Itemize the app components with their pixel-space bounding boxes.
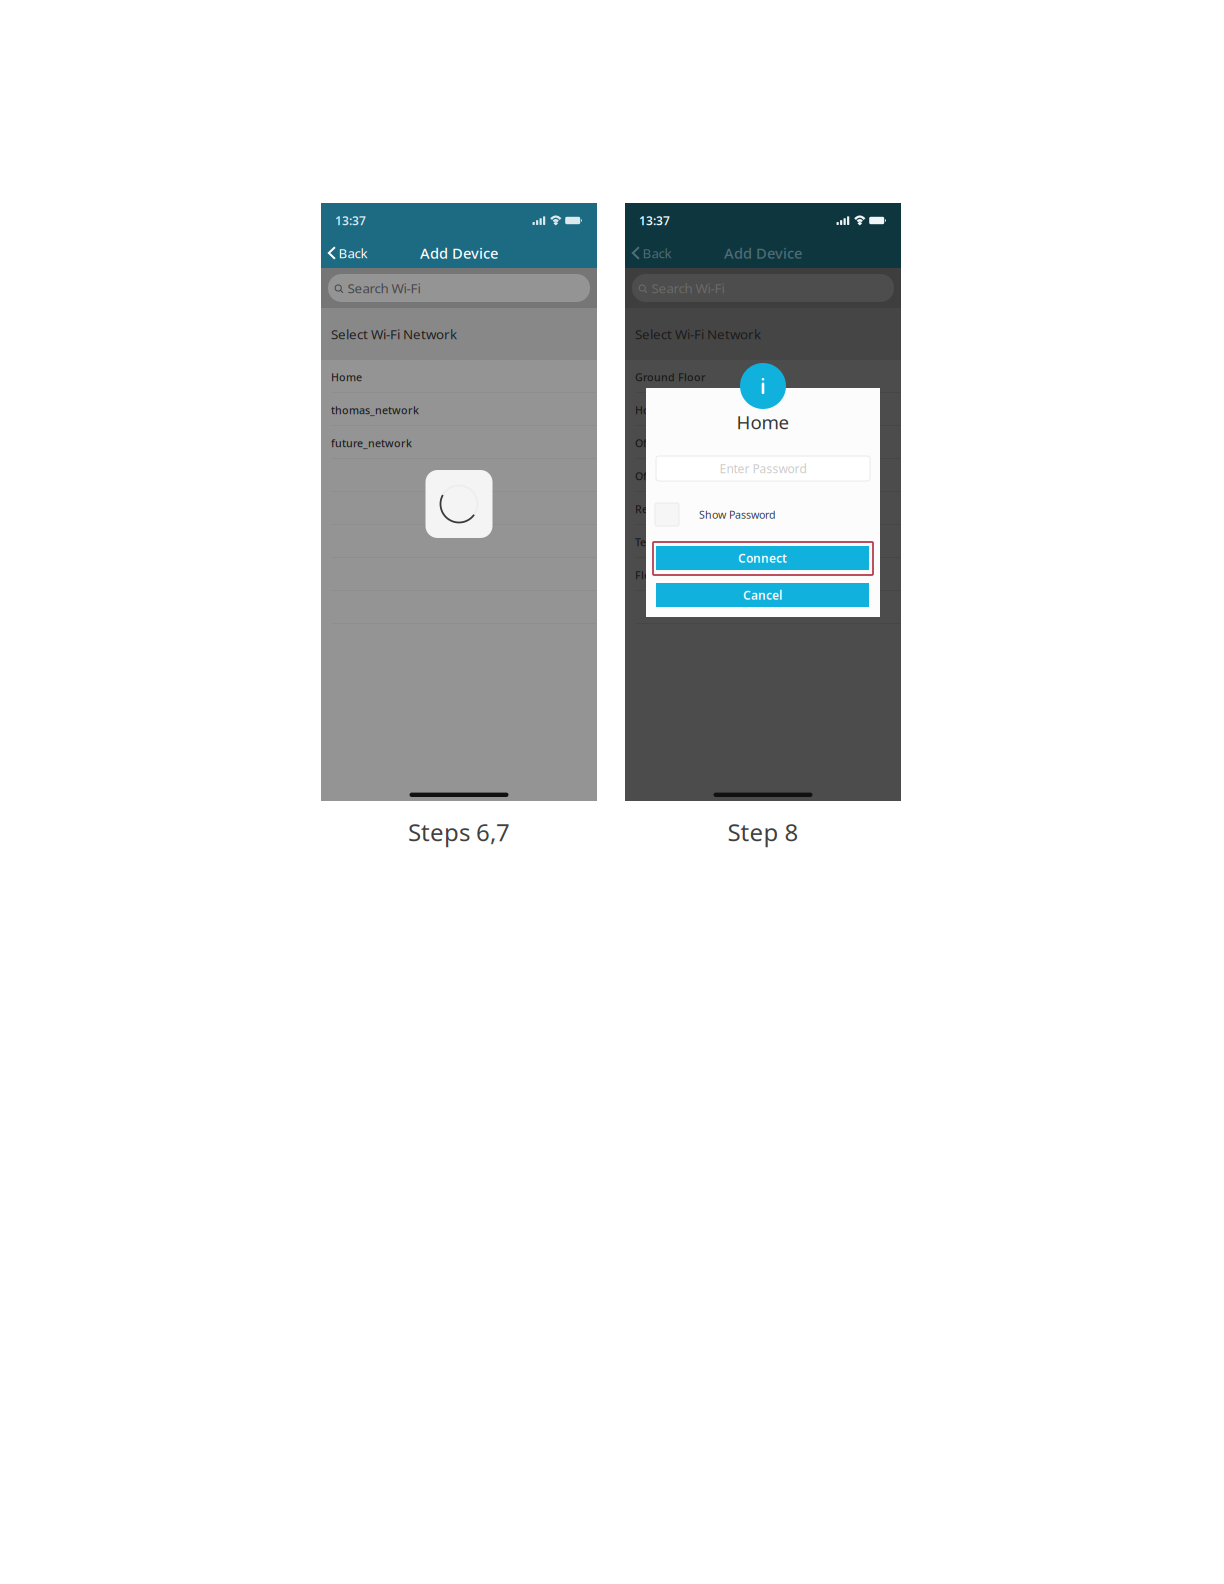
staticText: Enter Password — [719, 460, 806, 476]
staticText: Terrace — [635, 535, 672, 549]
staticText: Search Wi-Fi — [347, 279, 420, 297]
staticText: Add Device — [420, 243, 498, 263]
button[interactable]: Cancel — [656, 583, 869, 607]
staticText: Add Device — [724, 243, 802, 263]
staticText: Connect — [738, 550, 787, 566]
staticText: Back — [338, 244, 367, 262]
staticText: Select Wi-Fi Network — [331, 325, 457, 343]
button[interactable]: Back — [321, 238, 383, 268]
staticText: 13:37 — [639, 212, 670, 228]
staticText: Ground Floor — [635, 370, 706, 384]
button[interactable]: Connect — [656, 546, 869, 570]
button[interactable]: Back — [625, 238, 687, 268]
staticText: Floor_3 — [635, 568, 674, 582]
button[interactable]: Floor_3 — [625, 558, 901, 591]
button[interactable]: Search Wi-Fi — [632, 274, 894, 302]
button[interactable]: Ground Floor — [625, 360, 901, 393]
staticText: Steps 6,7 — [408, 816, 510, 848]
staticText: Office_5G — [635, 436, 683, 450]
staticText: Select Wi-Fi Network — [635, 325, 761, 343]
button[interactable]: future_network — [321, 426, 597, 459]
staticText: Show Password — [699, 507, 776, 522]
staticText: thomas_network — [331, 403, 419, 417]
button[interactable]: Reception — [625, 492, 901, 525]
button[interactable]: Home — [321, 360, 597, 393]
staticText: Step 8 — [727, 816, 798, 848]
staticText: Back — [642, 244, 671, 262]
button[interactable]: Search Wi-Fi — [328, 274, 590, 302]
button[interactable]: Show Password — [655, 503, 869, 526]
staticText: future_network — [331, 436, 412, 450]
staticText: Reception — [635, 502, 687, 516]
button[interactable]: Home — [625, 393, 901, 426]
staticText: Search Wi-Fi — [651, 279, 724, 297]
staticText: Home — [331, 370, 362, 384]
button[interactable] — [321, 525, 597, 558]
button[interactable]: Terrace — [625, 525, 901, 558]
button[interactable]: Office_2G — [625, 459, 901, 492]
button[interactable] — [321, 492, 597, 525]
button[interactable] — [625, 591, 901, 624]
staticText: Office_2G — [635, 469, 683, 483]
staticText: Home — [736, 410, 789, 434]
button[interactable] — [321, 459, 597, 492]
staticText: 13:37 — [335, 212, 366, 228]
button[interactable]: thomas_network — [321, 393, 597, 426]
staticText: Cancel — [743, 587, 782, 603]
button[interactable]: Office_5G — [625, 426, 901, 459]
staticText: Home — [635, 403, 666, 417]
